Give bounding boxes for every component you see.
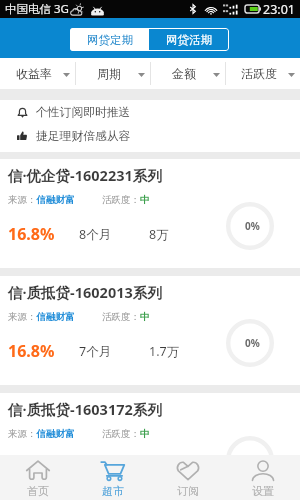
staticText: 7个月: [79, 343, 112, 360]
staticText: 23:01: [263, 1, 295, 18]
staticText: 订阅: [177, 484, 199, 498]
staticText: 活跃度：中: [102, 194, 150, 206]
button[interactable]: 信·质抵贷-1602013系列: [0, 276, 300, 385]
staticText: 活跃度: [241, 66, 277, 81]
button[interactable]: 网贷活期: [149, 28, 229, 51]
staticText: 信·优企贷-1602231系列: [8, 165, 162, 185]
staticText: 中国电信 3G: [5, 1, 69, 17]
button[interactable]: 捷足理财倍感从容: [0, 125, 300, 147]
staticText: 收益率: [16, 66, 52, 81]
staticText: 0%: [245, 219, 260, 233]
button[interactable]: 网贷定期: [70, 28, 149, 51]
other: Subscriptions: [176, 460, 200, 481]
button[interactable]: 信·质抵贷-1603172系列: [0, 393, 300, 455]
other: Market: [101, 460, 125, 481]
staticText: 网贷活期: [166, 33, 212, 47]
button[interactable]: Market: [75, 455, 150, 500]
button[interactable]: 收益率: [0, 58, 75, 89]
staticText: 金额: [172, 66, 196, 81]
staticText: 个性订阅即时推送: [36, 105, 131, 120]
staticText: 活跃度：中: [102, 311, 150, 323]
staticText: 信·质抵贷-1603172系列: [8, 399, 162, 419]
button[interactable]: 信·优企贷-1602231系列: [0, 159, 300, 268]
staticText: 8万: [149, 226, 169, 243]
staticText: 来源：信融财富: [8, 428, 75, 440]
staticText: 0%: [245, 336, 260, 350]
staticText: 8个月: [79, 226, 112, 243]
other: Home: [26, 460, 50, 481]
button[interactable]: 活跃度: [225, 58, 300, 89]
button[interactable]: Home: [0, 455, 75, 500]
staticText: 来源：信融财富: [8, 311, 75, 323]
button[interactable]: Subscriptions: [150, 455, 225, 500]
staticText: 设置: [252, 484, 274, 498]
staticText: 16.8%: [8, 457, 55, 479]
button[interactable]: 个性订阅即时推送: [0, 101, 300, 123]
other: Settings: [251, 460, 275, 481]
staticText: 活跃度：中: [102, 428, 150, 440]
button[interactable]: 周期: [75, 58, 150, 89]
staticText: 超市: [102, 484, 124, 498]
staticText: 来源：信融财富: [8, 194, 75, 206]
button[interactable]: 金额: [150, 58, 225, 89]
staticText: 捷足理财倍感从容: [36, 129, 131, 144]
staticText: 16.8%: [8, 340, 55, 362]
staticText: 0%: [245, 453, 260, 467]
staticText: 信·质抵贷-1602013系列: [8, 282, 162, 302]
staticText: 1.7万: [149, 343, 180, 360]
staticText: 16.8%: [8, 223, 55, 245]
staticText: 网贷定期: [87, 33, 133, 47]
button[interactable]: Settings: [225, 455, 300, 500]
staticText: 周期: [97, 66, 121, 81]
staticText: 首页: [27, 484, 49, 498]
staticText: 7个月: [79, 460, 112, 477]
staticText: 1.7万: [149, 460, 180, 477]
